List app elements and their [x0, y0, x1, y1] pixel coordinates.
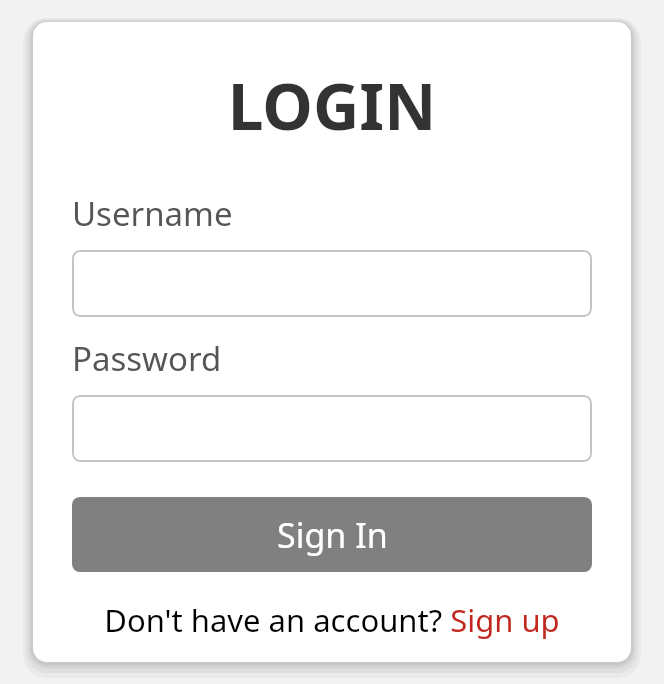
button[interactable]: Username input field — [72, 250, 592, 317]
staticText: LOGIN — [33, 62, 631, 149]
staticText: Don't have an account? Sign up — [104, 599, 560, 641]
button[interactable]: Sign In — [72, 497, 592, 572]
button[interactable]: Password input field — [72, 395, 592, 462]
staticText: Username — [72, 191, 233, 236]
staticText: Password — [72, 336, 222, 381]
staticText: Sign In — [277, 512, 388, 558]
button[interactable]: Don't have an account? Sign up — [104, 599, 560, 641]
